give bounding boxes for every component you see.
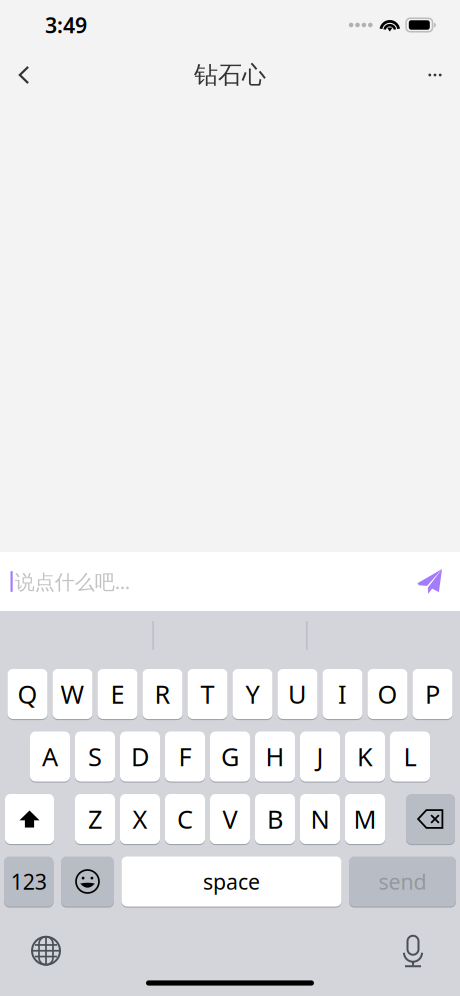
button[interactable]: L bbox=[390, 731, 430, 781]
button[interactable]: B bbox=[255, 794, 295, 844]
staticText: A bbox=[42, 740, 58, 773]
staticText: X bbox=[132, 802, 147, 836]
button[interactable]: G bbox=[210, 731, 250, 781]
staticText: D bbox=[131, 740, 149, 773]
staticText: 3:49 bbox=[45, 11, 87, 39]
button[interactable]: Delete bbox=[406, 794, 455, 844]
staticText: V bbox=[222, 802, 237, 836]
button[interactable]: A bbox=[30, 731, 70, 781]
staticText: Q bbox=[17, 677, 37, 711]
staticText: T bbox=[200, 677, 214, 711]
staticText: 说点什么吧... bbox=[15, 568, 130, 595]
staticText: R bbox=[154, 677, 170, 711]
button[interactable]: send bbox=[349, 856, 456, 906]
button[interactable]: More options bbox=[412, 52, 458, 98]
staticText: L bbox=[403, 740, 416, 773]
button[interactable]: Dictation bbox=[390, 928, 436, 974]
staticText: U bbox=[288, 677, 307, 711]
button[interactable]: E bbox=[97, 669, 137, 719]
button[interactable]: 123 bbox=[4, 856, 53, 906]
button[interactable]: N bbox=[300, 794, 340, 844]
button[interactable]: Switch keyboard bbox=[23, 928, 69, 974]
staticText: N bbox=[310, 802, 329, 836]
button[interactable]: D bbox=[120, 731, 160, 781]
button[interactable]: K bbox=[345, 731, 385, 781]
button[interactable]: Back bbox=[1, 52, 47, 98]
button[interactable]: Z bbox=[75, 794, 115, 844]
staticText: M bbox=[353, 802, 376, 836]
button[interactable]: I bbox=[322, 669, 362, 719]
staticText: C bbox=[177, 802, 193, 836]
button[interactable]: M bbox=[345, 794, 385, 844]
button[interactable]: C bbox=[165, 794, 205, 844]
staticText: space bbox=[203, 867, 260, 896]
button[interactable]: Y bbox=[232, 669, 272, 719]
button[interactable]: Emoji bbox=[61, 856, 114, 906]
staticText: B bbox=[267, 802, 283, 836]
staticText: Z bbox=[88, 802, 102, 836]
button[interactable]: U bbox=[277, 669, 317, 719]
staticText: O bbox=[377, 677, 397, 711]
staticText: K bbox=[357, 740, 373, 773]
button[interactable]: R bbox=[142, 669, 182, 719]
staticText: 123 bbox=[11, 867, 47, 896]
button[interactable]: S bbox=[75, 731, 115, 781]
staticText: Y bbox=[245, 677, 259, 711]
staticText: E bbox=[110, 677, 124, 711]
button[interactable]: H bbox=[255, 731, 295, 781]
button[interactable]: T bbox=[187, 669, 227, 719]
button[interactable]: Send bbox=[406, 557, 454, 605]
staticText: send bbox=[378, 867, 426, 896]
staticText: P bbox=[425, 677, 440, 711]
staticText: W bbox=[60, 677, 84, 711]
button[interactable]: Shift bbox=[5, 794, 54, 844]
button[interactable]: O bbox=[367, 669, 407, 719]
button[interactable]: V bbox=[210, 794, 250, 844]
button[interactable]: F bbox=[165, 731, 205, 781]
button[interactable]: W bbox=[52, 669, 92, 719]
staticText: H bbox=[265, 740, 284, 773]
staticText: F bbox=[178, 740, 191, 773]
button[interactable]: X bbox=[120, 794, 160, 844]
staticText: S bbox=[88, 740, 102, 773]
staticText: G bbox=[221, 740, 239, 773]
button[interactable]: P bbox=[412, 669, 452, 719]
staticText: J bbox=[316, 740, 323, 773]
staticText: I bbox=[338, 677, 347, 711]
button[interactable]: Q bbox=[7, 669, 47, 719]
staticText: 钻石心 bbox=[194, 60, 266, 90]
button[interactable]: space bbox=[121, 856, 341, 906]
button[interactable]: J bbox=[300, 731, 340, 781]
